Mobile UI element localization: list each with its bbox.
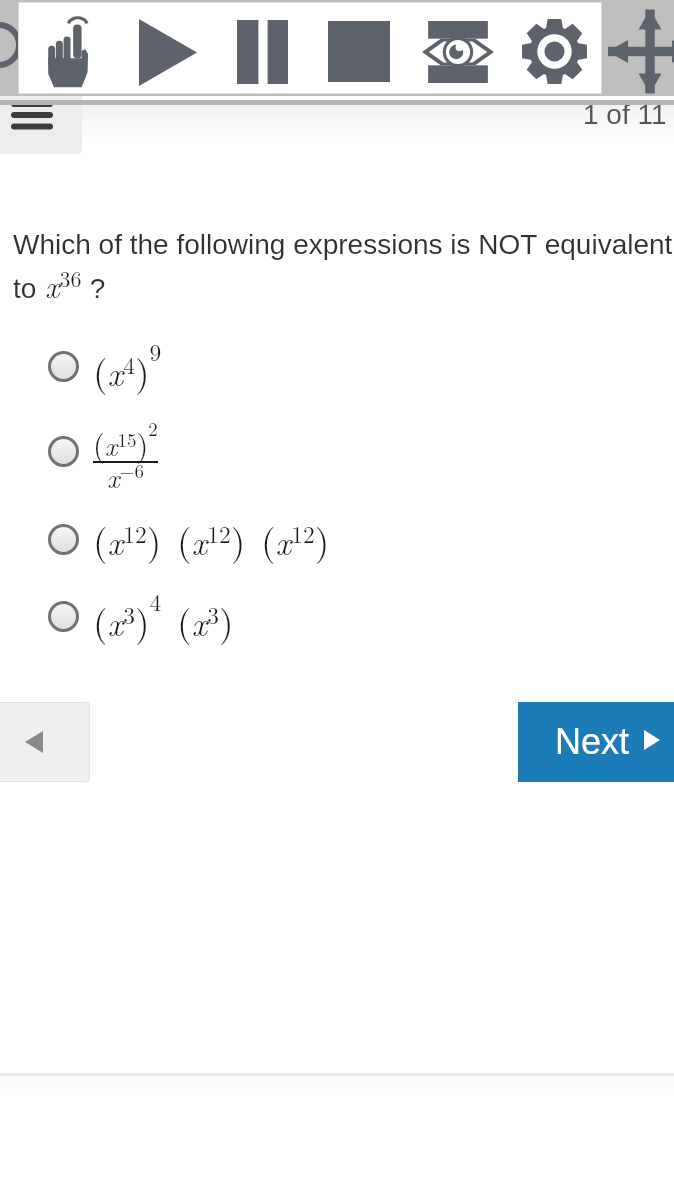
staticText: (x12) <box>261 513 330 566</box>
button[interactable]: Move <box>607 9 674 94</box>
button[interactable]: Menu <box>0 90 82 154</box>
staticText: (x3) <box>177 594 234 647</box>
button[interactable]: Play <box>139 19 197 86</box>
button[interactable]: (x15)2 <box>0 405 674 497</box>
staticText: Which of the following expressions is NO… <box>13 229 673 260</box>
staticText: x36 <box>45 262 82 307</box>
staticText: 1 of 11 <box>583 99 667 130</box>
staticText: x−6 <box>107 457 144 496</box>
button[interactable]: (x4)9 <box>0 320 674 412</box>
button[interactable]: (x12) <box>0 493 674 585</box>
staticText: (x3)4 <box>93 585 162 647</box>
staticText: ? <box>82 273 106 304</box>
staticText: (x12) <box>177 513 246 566</box>
staticText: (x4)9 <box>93 335 162 397</box>
button[interactable]: Settings <box>522 21 587 82</box>
button[interactable]: Next <box>518 702 674 782</box>
staticText: (x12) <box>93 513 162 566</box>
staticText: Next <box>555 721 630 761</box>
button[interactable]: Previous <box>0 702 90 782</box>
button[interactable]: Pause <box>237 20 288 84</box>
button[interactable]: (x3)4 <box>0 570 674 662</box>
staticText: (x15)2 <box>93 415 158 465</box>
staticText: to <box>13 273 45 304</box>
button[interactable]: Tap <box>47 17 95 88</box>
button[interactable]: Preview <box>422 21 494 83</box>
